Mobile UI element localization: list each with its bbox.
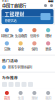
staticText: 生活缴费	[15, 33, 27, 38]
staticText: 转账汇款	[1, 33, 13, 38]
staticText: 我的	[45, 96, 51, 100]
button[interactable]: 理财	[41, 28, 55, 38]
button[interactable]: 贷款	[0, 41, 14, 51]
button[interactable]: 保险	[27, 41, 41, 51]
staticText: 9:41	[2, 0, 9, 3]
staticText: 信用卡	[30, 33, 39, 38]
staticText: 中国工商银行	[2, 2, 26, 9]
staticText: ●●▮	[48, 0, 53, 2]
staticText: 基金	[18, 46, 24, 51]
button[interactable]: 信用卡	[27, 28, 41, 38]
staticText: 首页	[4, 96, 10, 100]
staticText: 稳健优选	[4, 18, 16, 23]
button[interactable]: 更多	[41, 41, 55, 51]
button[interactable]: 我的	[41, 91, 55, 100]
button[interactable]: 基金	[14, 41, 28, 51]
button[interactable]: 转账汇款	[0, 28, 14, 38]
button[interactable]: Item	[8, 82, 13, 87]
button[interactable]: 生活	[14, 91, 28, 100]
button[interactable]: Messages	[50, 4, 53, 7]
button[interactable]: 首页	[0, 91, 14, 100]
staticText: 新客专享理财福利	[8, 65, 32, 69]
staticText: 理财	[31, 96, 37, 100]
button[interactable]: 工银理财	[1, 9, 53, 24]
button[interactable]: 理财	[27, 91, 41, 100]
staticText: 生活	[18, 96, 24, 100]
staticText: 贷款	[4, 46, 10, 51]
button[interactable]: 生活缴费	[14, 28, 28, 38]
staticText: 热门活动	[2, 58, 18, 63]
staticText: 工银理财	[4, 10, 24, 17]
staticText: 保险	[31, 46, 37, 51]
staticText: 为你推荐	[2, 75, 18, 80]
staticText: 更多	[45, 46, 51, 51]
button[interactable]: 新客专享理财福利	[2, 65, 53, 69]
staticText: 理财	[45, 33, 51, 38]
button[interactable]: Scan	[44, 4, 47, 7]
